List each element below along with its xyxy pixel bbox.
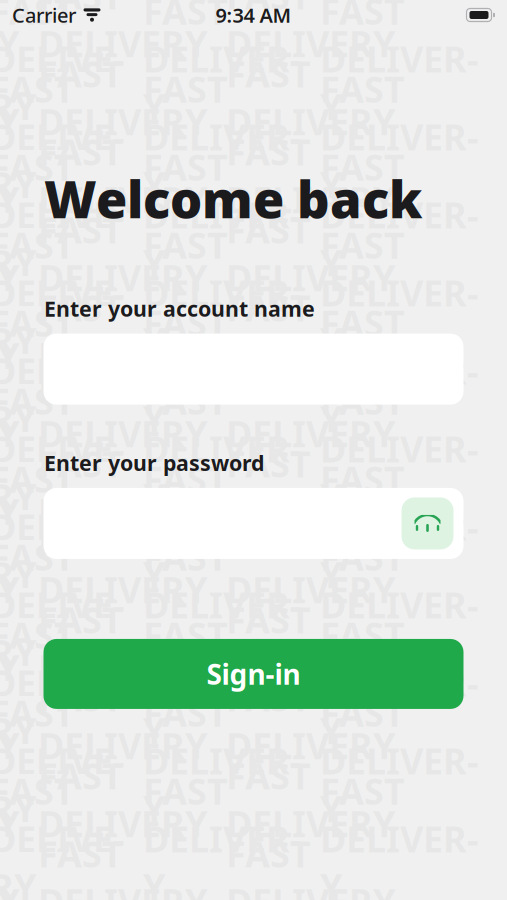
staticText: Carrier (12, 2, 76, 28)
staticText: Enter your password (44, 449, 264, 477)
staticText: Enter your account name (44, 294, 315, 323)
button[interactable]: Show password (401, 497, 453, 549)
staticText: FAST DELIVERY (0, 830, 20, 900)
staticText: 9:34 AM (215, 2, 291, 28)
staticText: FAST DELIVERY (0, 299, 125, 442)
staticText: FAST DELIVERY (320, 611, 479, 754)
staticText: FAST DELIVERY (320, 299, 479, 442)
staticText: FAST DELIVERY (38, 128, 208, 223)
staticText: FAST DELIVERY (38, 440, 208, 535)
staticText: FAST DELIVERY (226, 206, 396, 301)
staticText: FAST DELIVERY (143, 0, 302, 130)
staticText: FAST DELIVERY (320, 0, 479, 130)
staticText: FAST DELIVERY (320, 221, 479, 364)
staticText: FAST DELIVERY (226, 0, 396, 67)
staticText: FAST DELIVERY (320, 533, 479, 676)
staticText: FAST DELIVERY (0, 65, 125, 208)
staticText: FAST DELIVERY (0, 533, 125, 676)
staticText: FAST DELIVERY (38, 674, 208, 769)
staticText: FAST DELIVERY (0, 0, 20, 67)
staticText: FAST DELIVERY (0, 0, 125, 130)
staticText: FAST DELIVERY (0, 767, 125, 900)
staticText: FAST DELIVERY (0, 752, 20, 847)
staticText: FAST DELIVERY (0, 596, 20, 691)
staticText: FAST DELIVERY (0, 221, 125, 364)
staticText: FAST DELIVERY (0, 518, 20, 613)
staticText: FAST DELIVERY (0, 206, 20, 301)
staticText: FAST DELIVERY (0, 455, 125, 598)
staticText: FAST DELIVERY (0, 689, 125, 832)
staticText: FAST DELIVERY (0, 674, 20, 769)
staticText: FAST DELIVERY (143, 65, 302, 208)
staticText: FAST DELIVERY (0, 440, 20, 535)
staticText: FAST DELIVERY (226, 752, 396, 847)
staticText: FAST DELIVERY (226, 596, 396, 691)
staticText: FAST DELIVERY (226, 518, 396, 613)
staticText: FAST DELIVERY (0, 284, 20, 379)
staticText: FAST DELIVERY (143, 455, 302, 598)
staticText: FAST DELIVERY (0, 362, 20, 457)
staticText: FAST DELIVERY (38, 830, 208, 900)
staticText: FAST DELIVERY (0, 128, 20, 223)
staticText: FAST DELIVERY (38, 50, 208, 145)
staticText: FAST DELIVERY (38, 596, 208, 691)
staticText: FAST DELIVERY (38, 284, 208, 379)
staticText: FAST DELIVERY (143, 299, 302, 442)
staticText: FAST DELIVERY (320, 143, 479, 286)
staticText: FAST DELIVERY (226, 362, 396, 457)
staticText: Welcome back (44, 165, 422, 232)
staticText: FAST DELIVERY (226, 830, 396, 900)
staticText: FAST DELIVERY (0, 611, 125, 754)
staticText: FAST DELIVERY (0, 143, 125, 286)
staticText: FAST DELIVERY (0, 377, 125, 520)
staticText: FAST DELIVERY (226, 674, 396, 769)
staticText: FAST DELIVERY (226, 440, 396, 535)
staticText: FAST DELIVERY (38, 752, 208, 847)
staticText: FAST DELIVERY (38, 518, 208, 613)
staticText: FAST DELIVERY (226, 50, 396, 145)
staticText: FAST DELIVERY (226, 128, 396, 223)
staticText: FAST DELIVERY (38, 0, 208, 67)
staticText: FAST DELIVERY (320, 377, 479, 520)
staticText: FAST DELIVERY (143, 221, 302, 364)
staticText: FAST DELIVERY (143, 377, 302, 520)
staticText: FAST DELIVERY (143, 689, 302, 832)
staticText: FAST DELIVERY (320, 455, 479, 598)
staticText: Sign-in (206, 655, 300, 693)
button[interactable]: Sign-in (43, 639, 463, 709)
staticText: FAST DELIVERY (320, 65, 479, 208)
staticText: FAST DELIVERY (320, 689, 479, 832)
staticText: FAST DELIVERY (143, 143, 302, 286)
staticText: FAST DELIVERY (38, 206, 208, 301)
staticText: FAST DELIVERY (38, 362, 208, 457)
staticText: FAST DELIVERY (226, 284, 396, 379)
staticText: FAST DELIVERY (143, 533, 302, 676)
staticText: FAST DELIVERY (143, 611, 302, 754)
staticText: FAST DELIVERY (0, 50, 20, 145)
staticText: FAST DELIVERY (320, 767, 479, 900)
staticText: FAST DELIVERY (143, 767, 302, 900)
